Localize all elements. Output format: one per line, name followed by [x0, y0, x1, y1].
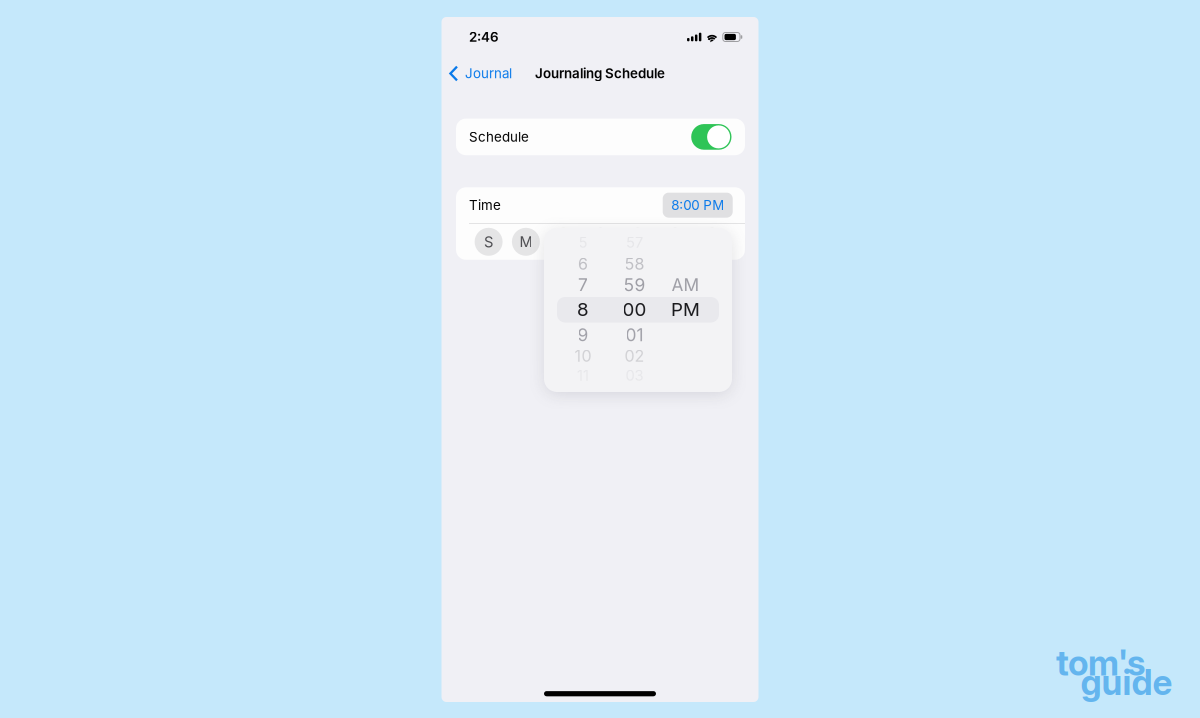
staticText: Time — [469, 197, 501, 213]
staticText: 01 — [625, 324, 643, 345]
staticText: 58 — [624, 254, 644, 274]
button[interactable]: Schedule — [456, 119, 745, 155]
button[interactable]: M — [512, 228, 540, 256]
staticText: 6 — [578, 254, 588, 274]
staticText: 00 — [622, 298, 646, 320]
staticText: 7 — [578, 274, 588, 295]
staticText: 11 — [577, 367, 589, 384]
staticText: Journal — [465, 65, 512, 81]
staticText: 5 — [578, 234, 587, 251]
staticText: Schedule — [469, 129, 529, 145]
staticText: tom's — [1056, 642, 1145, 684]
button[interactable]: 8:00 PM — [663, 193, 733, 218]
staticText: 8 — [577, 298, 589, 320]
staticText: S — [484, 233, 493, 251]
staticText: 57 — [626, 234, 643, 251]
staticText: AM — [671, 274, 699, 295]
staticText: 9 — [577, 324, 588, 345]
staticText: 10 — [574, 346, 591, 366]
staticText: PM — [671, 298, 700, 320]
staticText: 8:00 PM — [671, 197, 724, 213]
staticText: 59 — [623, 274, 645, 295]
staticText: M — [519, 233, 532, 251]
staticText: 2:46 — [469, 29, 499, 45]
staticText: 02 — [624, 346, 644, 366]
staticText: Journaling Schedule — [535, 65, 665, 81]
button[interactable]: Journal — [441, 60, 512, 87]
staticText: guide — [1080, 661, 1172, 703]
staticText: 03 — [625, 367, 643, 384]
button[interactable]: S — [475, 228, 503, 256]
staticText: T — [633, 233, 642, 251]
